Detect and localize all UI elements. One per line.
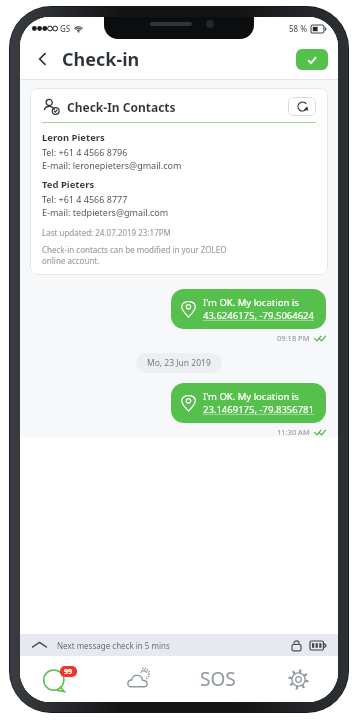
staticText: Next message check in 5 mins — [57, 640, 170, 651]
staticText: Last updated: 24.07.2019 23:17PM — [42, 227, 171, 238]
staticText: 09:18 PM — [277, 333, 310, 343]
button[interactable]: Confirm check-in — [296, 49, 328, 70]
staticText: Tel: +61 4 4566 8796 — [42, 146, 128, 158]
button[interactable]: Settings — [258, 656, 338, 702]
staticText: Tel: +61 4 4566 8777 — [42, 193, 128, 205]
staticText: 23.1469175, -79.8356781 — [203, 403, 314, 416]
staticText: I'm OK. My location is — [203, 296, 299, 309]
button[interactable]: Back — [30, 46, 56, 72]
staticText: Check-in — [62, 47, 140, 72]
staticText: Ted Pieters — [42, 178, 95, 191]
button[interactable]: Check-In Contacts — [30, 88, 328, 275]
button[interactable]: SOS — [178, 656, 258, 702]
staticText: 58 % — [289, 23, 308, 34]
staticText: Check-In Contacts — [67, 99, 176, 115]
staticText: I'm OK. My location is — [203, 390, 299, 403]
button[interactable]: I'm OK. My location is — [171, 383, 326, 423]
staticText: GS — [60, 23, 71, 34]
staticText: SOS — [200, 666, 236, 692]
staticText: E-mail: tedpieters@gmail.com — [42, 206, 169, 218]
staticText: E-mail: leronepieters@gmail.com — [42, 159, 182, 171]
button[interactable]: I'm OK. My location is — [171, 289, 326, 329]
button[interactable]: Messages — [20, 656, 99, 702]
staticText: 11:30 AM — [277, 427, 310, 437]
staticText: 43.6246175, -79.5064624 — [203, 309, 314, 322]
staticText: Check-in contacts can be modified in you… — [42, 244, 227, 266]
button[interactable]: Refresh contacts — [288, 97, 316, 116]
staticText: 99 — [64, 667, 73, 677]
staticText: Leron Pieters — [42, 131, 105, 144]
button[interactable]: Next message check in 5 mins — [20, 634, 338, 656]
button[interactable]: Weather — [99, 656, 178, 702]
staticText: Mo, 23 Jun 2019 — [147, 357, 211, 369]
